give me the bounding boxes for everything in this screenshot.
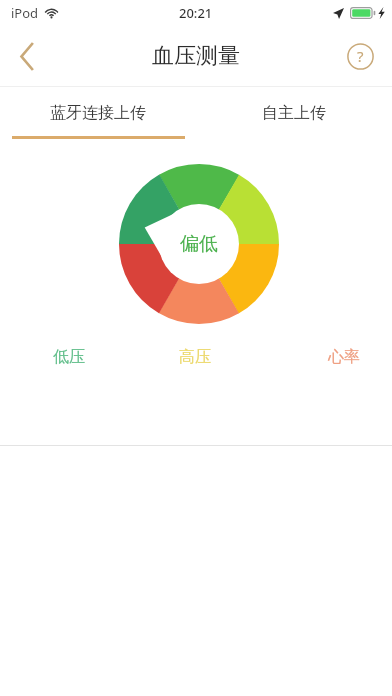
staticText: 低压 (53, 347, 85, 367)
staticText: iPod (11, 4, 39, 22)
staticText: 蓝牙连接上传 (50, 103, 146, 123)
button[interactable]: 蓝牙连接上传 (0, 87, 196, 139)
staticText: 偏低 (180, 232, 218, 256)
staticText: 20:21 (179, 4, 213, 22)
button[interactable]: 自主上传 (196, 87, 392, 139)
button[interactable]: Back (0, 29, 54, 83)
staticText: 高压 (179, 347, 211, 367)
staticText: 心率 (328, 347, 360, 367)
staticText: ? (357, 46, 364, 66)
staticText: 自主上传 (262, 103, 326, 123)
staticText: 血压测量 (152, 42, 240, 70)
button[interactable]: Help (337, 33, 383, 79)
